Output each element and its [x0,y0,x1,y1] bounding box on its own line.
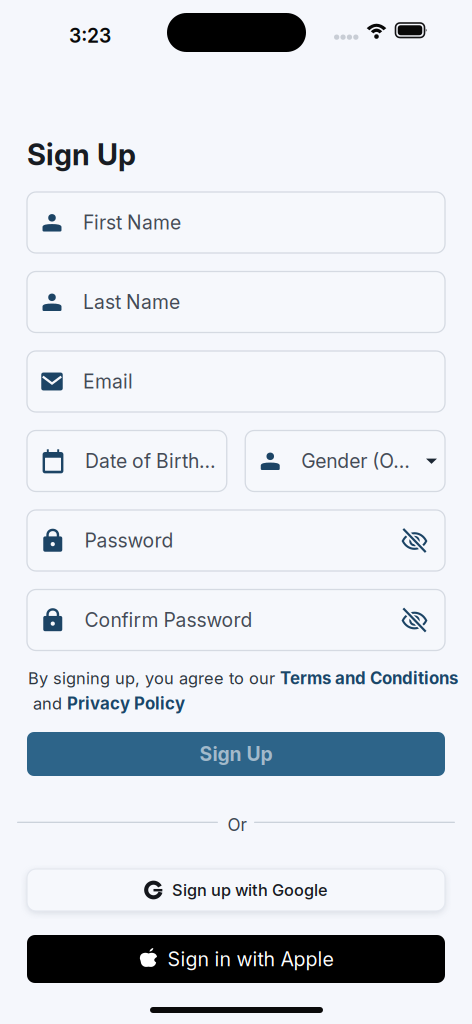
button[interactable]: Sign in with Apple [27,935,445,983]
staticText: Gender (O… [301,449,410,473]
button[interactable]: Gender (O… [245,430,445,491]
staticText: Sign Up [27,137,136,172]
staticText: 3:23 [69,24,111,47]
staticText: Sign up with Google [172,880,328,900]
staticText: Sign in with Apple [167,947,333,971]
staticText: Password [84,529,173,552]
button[interactable]: Date of Birth… [27,430,227,491]
staticText: Privacy Policy [67,693,185,714]
staticText: and [28,694,67,713]
button[interactable]: Last Name [27,271,445,332]
staticText: Confirm Password [84,608,252,632]
button[interactable]: First Name [27,192,445,253]
button[interactable]: Password [27,510,445,571]
staticText: By signing up, you agree to our [28,668,280,688]
staticText: Sign Up [199,742,272,766]
staticText: Email [83,370,133,393]
staticText: Terms and Conditions [280,668,458,688]
button[interactable]: Email [27,351,445,412]
button[interactable]: Sign Up [27,732,445,776]
staticText: Or [227,814,246,835]
button[interactable]: Confirm Password [27,589,445,650]
staticText: Date of Birth… [85,449,216,473]
staticText: First Name [83,211,181,234]
button[interactable]: Sign up with Google [27,869,445,911]
staticText: Last Name [83,290,180,314]
